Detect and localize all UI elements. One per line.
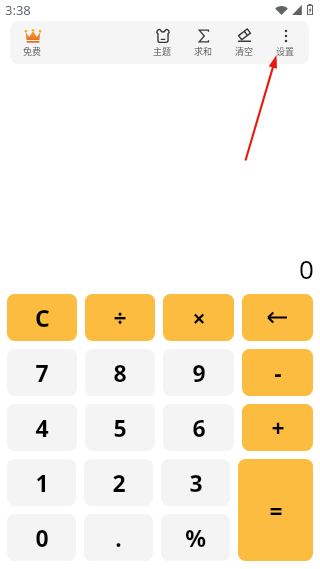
staticText: × (192, 302, 206, 333)
staticText: + (271, 412, 285, 443)
staticText: = (269, 495, 283, 526)
staticText: 主题 (153, 45, 172, 58)
button[interactable]: = (238, 459, 313, 561)
staticText: C (35, 302, 50, 333)
button[interactable]: 1 (7, 459, 76, 506)
button[interactable]: 主题 (142, 21, 183, 64)
button[interactable]: 8 (85, 349, 155, 396)
other: Backspace (267, 312, 288, 323)
staticText: 1 (35, 467, 49, 498)
staticText: ÷ (113, 302, 127, 333)
staticText: % (185, 522, 206, 553)
staticText: - (274, 357, 282, 388)
staticText: . (115, 522, 122, 553)
staticText: 6 (192, 412, 206, 443)
button[interactable]: 7 (7, 349, 77, 396)
staticText: 4 (35, 412, 49, 443)
button[interactable]: 免费 (12, 21, 53, 64)
button[interactable]: . (84, 514, 153, 561)
button[interactable]: - (242, 349, 313, 396)
button[interactable]: 5 (85, 404, 155, 451)
button[interactable]: 设置 (265, 21, 306, 64)
button[interactable]: × (163, 294, 234, 341)
staticText: 设置 (276, 45, 295, 58)
staticText: 2 (112, 467, 126, 498)
button[interactable]: 清空 (224, 21, 265, 64)
button[interactable]: 求和 (183, 21, 224, 64)
staticText: 5 (113, 412, 127, 443)
staticText: 0 (35, 522, 49, 553)
button[interactable]: C (7, 294, 77, 341)
button[interactable]: 6 (163, 404, 234, 451)
button[interactable]: 4 (7, 404, 77, 451)
button[interactable]: 2 (84, 459, 153, 506)
staticText: 8 (113, 357, 127, 388)
button[interactable]: Backspace (242, 294, 313, 341)
staticText: 3:38 (5, 1, 31, 19)
staticText: 0 (299, 251, 314, 286)
button[interactable]: 3 (161, 459, 230, 506)
staticText: 7 (35, 357, 49, 388)
button[interactable]: % (161, 514, 230, 561)
button[interactable]: + (242, 404, 313, 451)
button[interactable]: 9 (163, 349, 234, 396)
staticText: 3 (189, 467, 203, 498)
button[interactable]: ÷ (85, 294, 155, 341)
staticText: 清空 (235, 45, 254, 58)
button[interactable]: 0 (7, 514, 76, 561)
staticText: 求和 (194, 45, 213, 58)
staticText: 9 (192, 357, 206, 388)
staticText: 免费 (23, 45, 42, 58)
